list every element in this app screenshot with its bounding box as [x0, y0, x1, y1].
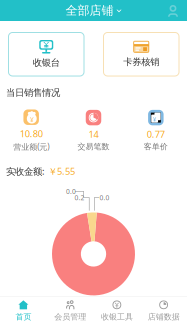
- staticText: 当日销售情况: [6, 87, 60, 98]
- staticText: 10.80: [20, 127, 43, 140]
- button[interactable]: 会员管理: [47, 295, 94, 324]
- button[interactable]: 卡券核销: [103, 32, 179, 76]
- staticText: 收银台: [33, 57, 60, 68]
- button[interactable]: 收银工具: [93, 295, 140, 324]
- staticText: 0.0: [99, 193, 109, 202]
- staticText: 实收金额:: [6, 165, 45, 177]
- staticText: 0.0: [66, 187, 76, 196]
- staticText: 全部店铺: [65, 3, 113, 18]
- staticText: 首页: [15, 312, 31, 322]
- staticText: 收银工具: [101, 312, 133, 322]
- staticText: 0.77: [147, 128, 165, 140]
- staticText: 营业额(元): [13, 141, 49, 152]
- button[interactable]: 账户: [163, 1, 183, 20]
- staticText: 店铺数据: [148, 312, 180, 322]
- button[interactable]: 收银台: [8, 32, 84, 76]
- staticText: 0.2: [74, 193, 84, 202]
- staticText: 会员管理: [54, 312, 86, 322]
- staticText: 客单价: [144, 142, 168, 152]
- staticText: 14: [88, 128, 98, 140]
- button[interactable]: 店铺数据: [140, 295, 187, 324]
- staticText: ￥5.55: [48, 165, 75, 177]
- staticText: 卡券核销: [123, 56, 159, 68]
- staticText: 交易笔数: [77, 142, 109, 152]
- button[interactable]: 首页: [0, 295, 47, 324]
- button[interactable]: 全部店铺: [59, 0, 127, 21]
